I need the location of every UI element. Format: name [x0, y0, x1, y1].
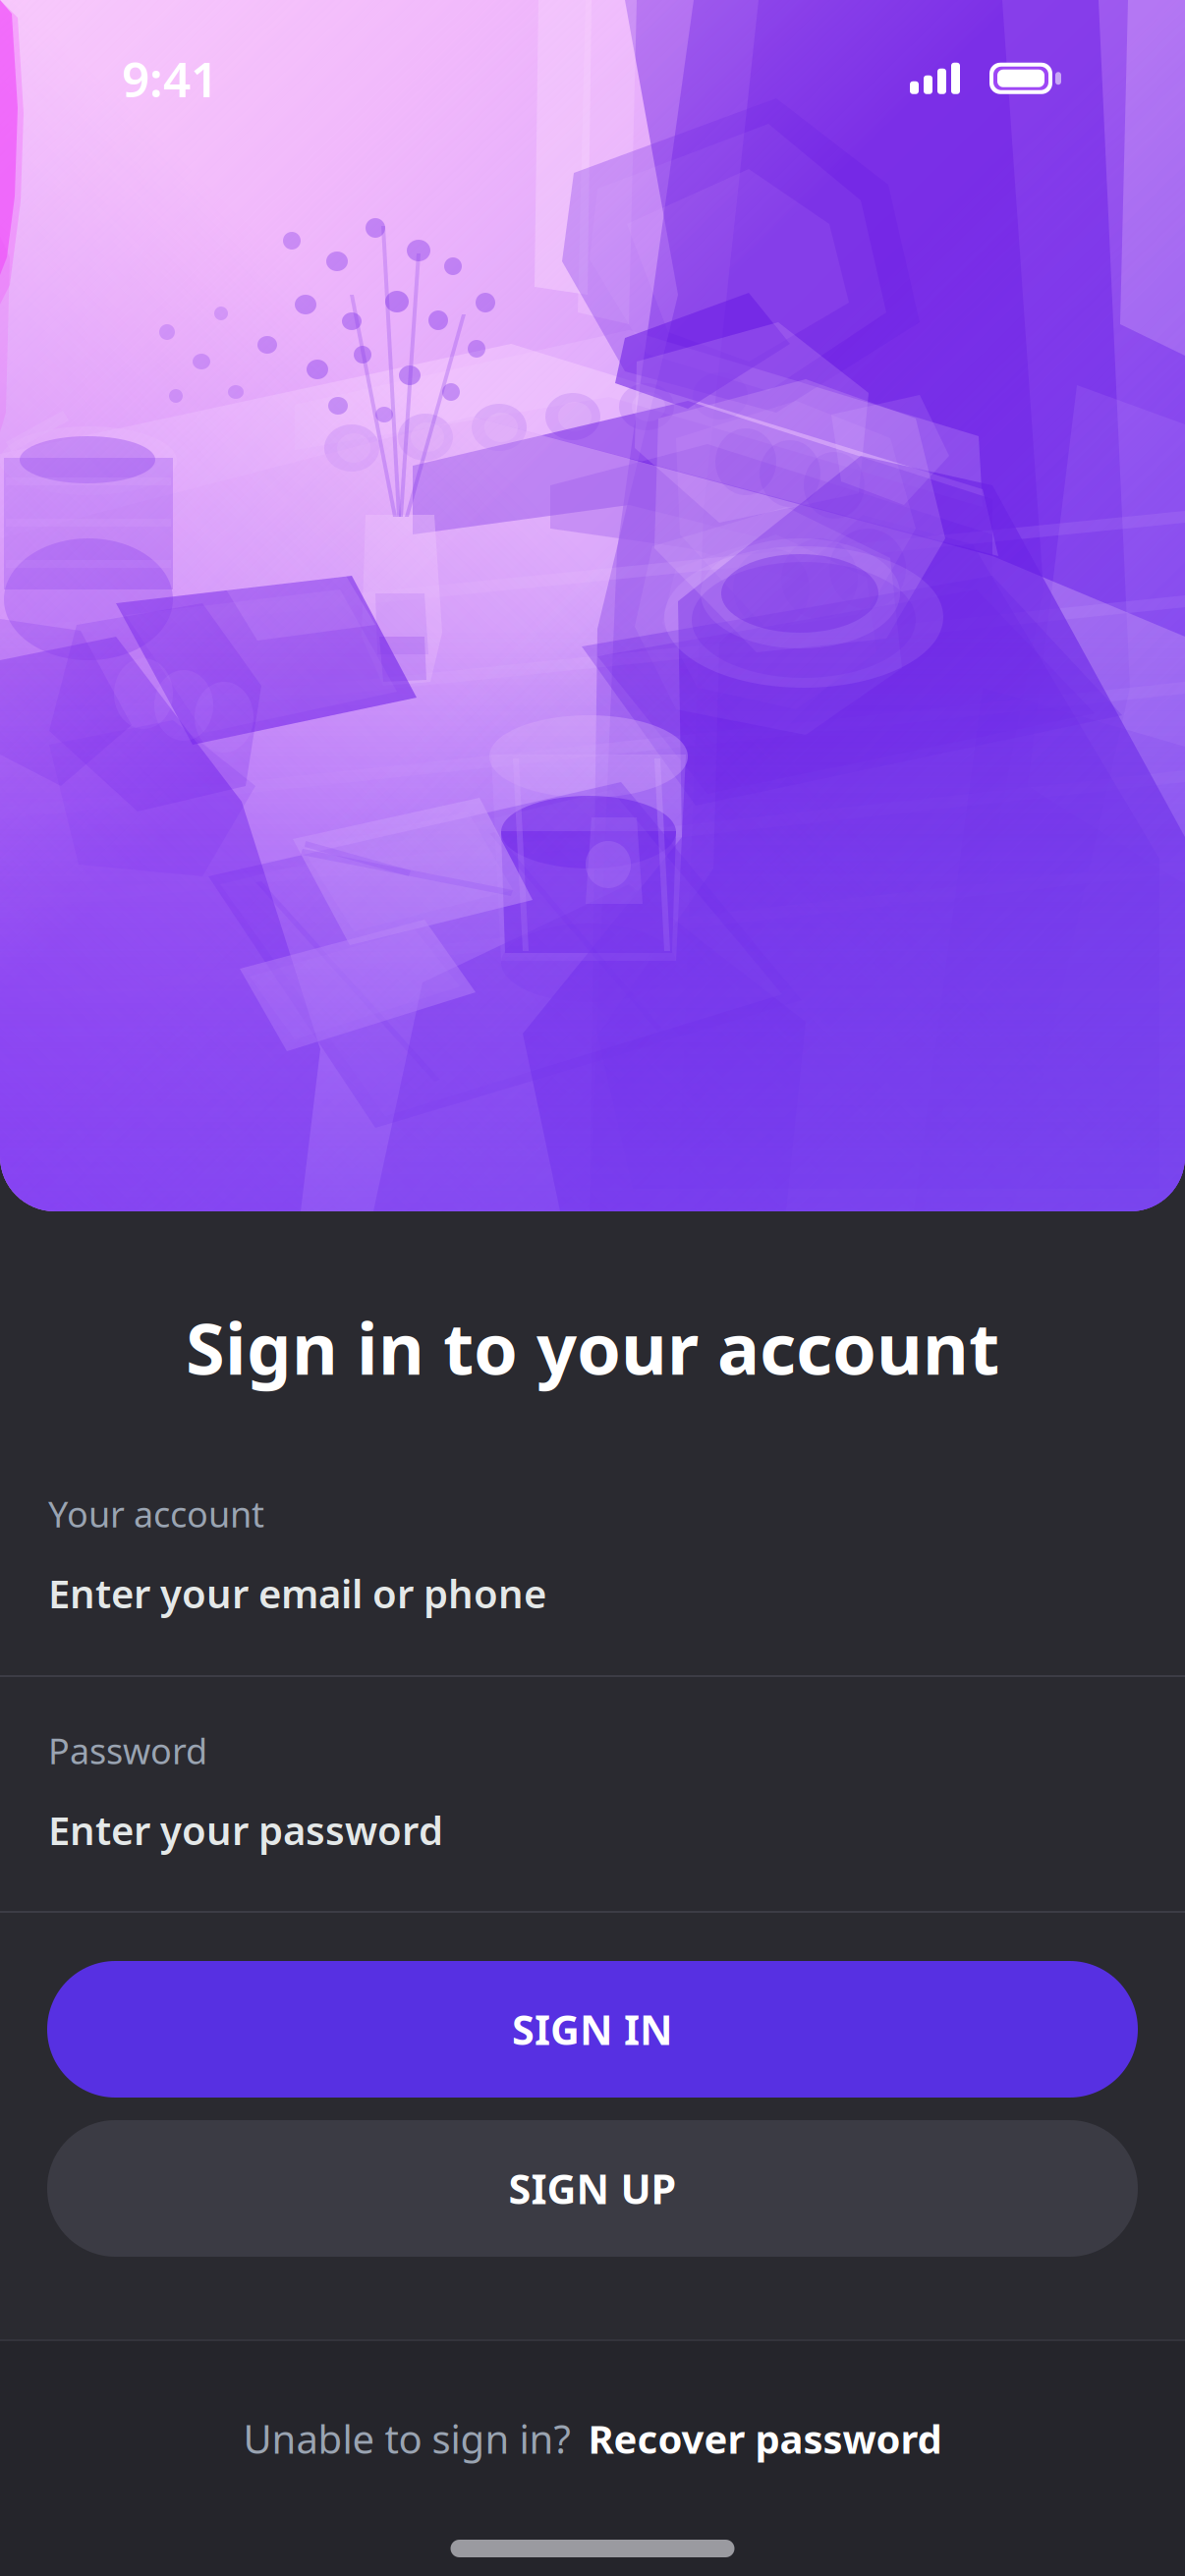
- staticText: Enter your email or phone: [48, 1567, 546, 1619]
- button[interactable]: Your account: [0, 1402, 1185, 1675]
- button[interactable]: SIGN IN: [47, 1961, 1138, 2098]
- staticText: Your account: [48, 1490, 264, 1537]
- button[interactable]: Password: [0, 1677, 1185, 1911]
- staticText: 9:41: [122, 46, 218, 111]
- button[interactable]: SIGN UP: [47, 2120, 1138, 2257]
- staticText: SIGN IN: [512, 2002, 673, 2056]
- staticText: Sign in to your account: [186, 1300, 999, 1394]
- button[interactable]: Unable to sign in?: [0, 2341, 1185, 2536]
- staticText: Unable to sign in?: [243, 2412, 570, 2464]
- staticText: SIGN UP: [508, 2162, 677, 2215]
- staticText: Recover password: [588, 2412, 942, 2464]
- staticText: Password: [48, 1727, 207, 1774]
- staticText: Enter your password: [48, 1804, 443, 1856]
